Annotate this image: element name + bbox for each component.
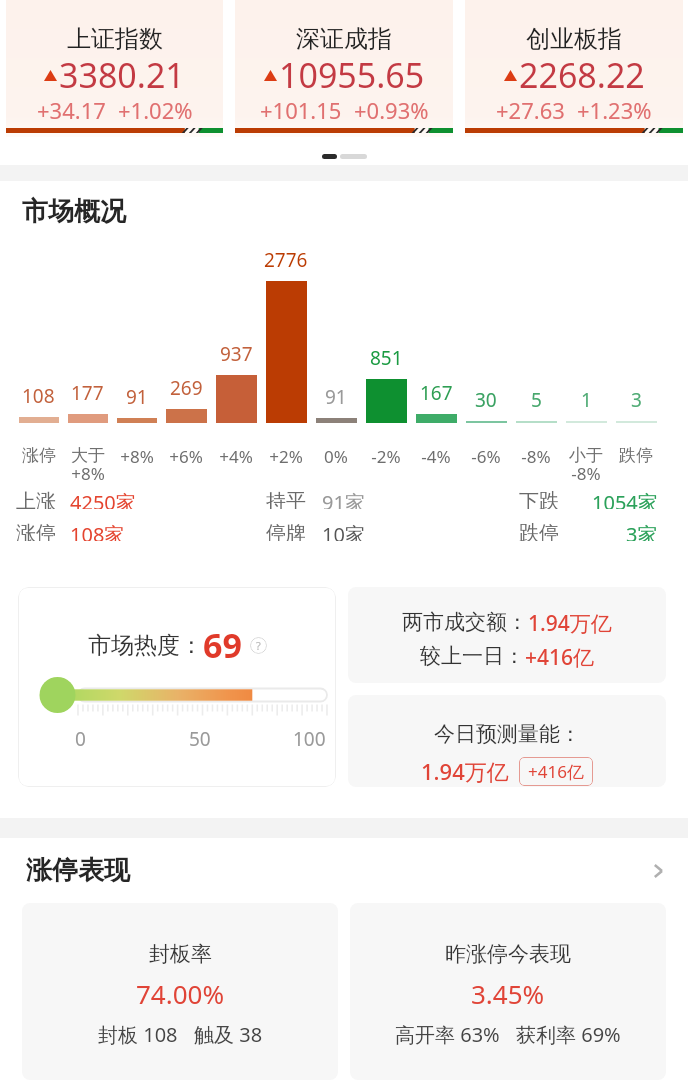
staticText: 今日预测量能： xyxy=(434,721,581,747)
staticText: 创业板指 xyxy=(526,24,622,54)
staticText: 获利率 69% xyxy=(516,1021,621,1048)
staticText: 涨停 xyxy=(16,521,56,541)
button[interactable]: 上证指数 xyxy=(6,0,223,137)
staticText: 269 xyxy=(170,375,203,401)
staticText: 昨涨停今表现 xyxy=(445,941,571,967)
staticText: 5 xyxy=(531,387,542,413)
staticText: 74.00% xyxy=(136,976,225,1011)
staticText: 较上一日： xyxy=(420,643,525,669)
staticText: ? xyxy=(256,638,261,653)
staticText: +27.63 xyxy=(496,95,565,125)
staticText: 3 xyxy=(631,387,642,413)
button[interactable]: 市场热度： xyxy=(18,587,336,787)
staticText: -2% xyxy=(371,445,401,468)
staticText: 涨停 xyxy=(22,445,56,466)
staticText: 91 xyxy=(325,384,347,410)
staticText: -8% xyxy=(521,445,551,468)
staticText: 91家 xyxy=(322,489,365,509)
staticText: 2268.22 xyxy=(519,52,645,98)
staticText: 177 xyxy=(71,380,104,406)
staticText: +8% xyxy=(120,445,154,468)
staticText: 跌停 xyxy=(619,445,653,466)
staticText: 69 xyxy=(203,622,242,668)
staticText: +2% xyxy=(269,445,303,468)
staticText: +1.02% xyxy=(118,95,193,125)
staticText: 下跌 xyxy=(519,489,559,509)
staticText: +416亿 xyxy=(528,760,584,783)
staticText: 100 xyxy=(293,726,326,752)
staticText: 跌停 xyxy=(519,521,559,541)
staticText: 小于 -8% xyxy=(569,445,603,485)
staticText: 91 xyxy=(126,384,148,410)
staticText: 1 xyxy=(581,387,592,413)
staticText: 上证指数 xyxy=(67,24,163,54)
button[interactable]: 深证成指 xyxy=(235,0,453,137)
staticText: 市场概况 xyxy=(22,195,126,228)
staticText: 深证成指 xyxy=(296,24,392,54)
staticText: 封板 108 xyxy=(98,1021,178,1048)
button[interactable]: 创业板指 xyxy=(465,0,683,137)
staticText: -6% xyxy=(471,445,501,468)
staticText: 市场热度： xyxy=(88,631,203,660)
staticText: 937 xyxy=(220,341,253,367)
staticText: +1.23% xyxy=(577,95,652,125)
staticText: 上涨 xyxy=(16,489,56,509)
staticText: 2776 xyxy=(264,247,308,273)
staticText: 10955.65 xyxy=(279,52,425,98)
staticText: 涨停表现 xyxy=(26,854,130,887)
staticText: 大于 +8% xyxy=(71,445,105,485)
staticText: 高开率 63% xyxy=(395,1021,500,1048)
staticText: 1.94万亿 xyxy=(421,756,509,786)
staticText: 1.94万亿 xyxy=(528,609,612,638)
button[interactable]: 昨涨停今表现 xyxy=(350,903,666,1080)
staticText: 108家 xyxy=(70,521,125,541)
staticText: 50 xyxy=(189,726,211,752)
staticText: 两市成交额： xyxy=(402,609,528,635)
staticText: +6% xyxy=(169,445,203,468)
button[interactable]: 两市成交额： xyxy=(348,587,666,683)
staticText: +34.17 xyxy=(37,95,106,125)
staticText: +0.93% xyxy=(354,95,429,125)
staticText: 10家 xyxy=(322,521,365,541)
staticText: 4250家 xyxy=(70,489,136,509)
staticText: 持平 xyxy=(266,489,306,509)
staticText: 3380.21 xyxy=(59,52,185,98)
button[interactable]: 今日预测量能： xyxy=(348,695,666,787)
button[interactable]: 封板率 xyxy=(22,903,338,1080)
staticText: +416亿 xyxy=(525,643,595,672)
staticText: 0 xyxy=(75,726,86,752)
staticText: 3家 xyxy=(626,521,658,541)
staticText: 1054家 xyxy=(592,489,658,509)
staticText: +4% xyxy=(219,445,253,468)
staticText: 3.45% xyxy=(471,976,545,1011)
button[interactable]: 涨停表现 xyxy=(26,854,668,887)
staticText: 0% xyxy=(324,445,348,468)
staticText: 851 xyxy=(370,345,403,371)
staticText: 触及 38 xyxy=(194,1021,263,1048)
staticText: -4% xyxy=(421,445,451,468)
staticText: 30 xyxy=(475,387,497,413)
staticText: +101.15 xyxy=(260,95,342,125)
staticText: 封板率 xyxy=(149,941,212,967)
staticText: 停牌 xyxy=(266,521,306,541)
other: More xyxy=(648,861,668,881)
staticText: 108 xyxy=(22,383,55,409)
staticText: 167 xyxy=(420,380,453,406)
